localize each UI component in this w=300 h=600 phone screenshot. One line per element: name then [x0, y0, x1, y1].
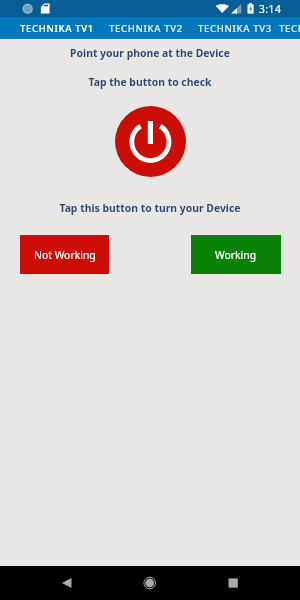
- staticText: Tap the button to check: [0, 75, 300, 89]
- staticText: TECHNIKA TV2: [109, 22, 183, 35]
- staticText: TECHNIKA TV4: [279, 22, 300, 35]
- staticText: TECHNIKA TV3: [198, 22, 272, 35]
- button[interactable]: Recent apps: [211, 566, 256, 600]
- button[interactable]: TECHNIKA TV1: [12, 17, 101, 39]
- button[interactable]: Not Working: [20, 235, 109, 274]
- button[interactable]: Back: [45, 566, 90, 600]
- button[interactable]: Power: [115, 106, 186, 177]
- button[interactable]: TECHNIKA TV2: [101, 17, 190, 39]
- button[interactable]: Home: [128, 566, 173, 600]
- staticText: TECHNIKA TV1: [20, 22, 94, 35]
- button[interactable]: Working: [191, 235, 281, 274]
- staticText: Not Working: [34, 248, 96, 262]
- button[interactable]: TECHNIKA TV3: [190, 17, 279, 39]
- staticText: Point your phone at the Device: [0, 46, 300, 60]
- staticText: Tap this button to turn your Device: [0, 201, 300, 215]
- staticText: 3:14: [259, 2, 282, 16]
- staticText: Working: [215, 248, 257, 262]
- button[interactable]: TECHNIKA TV4: [279, 17, 300, 39]
